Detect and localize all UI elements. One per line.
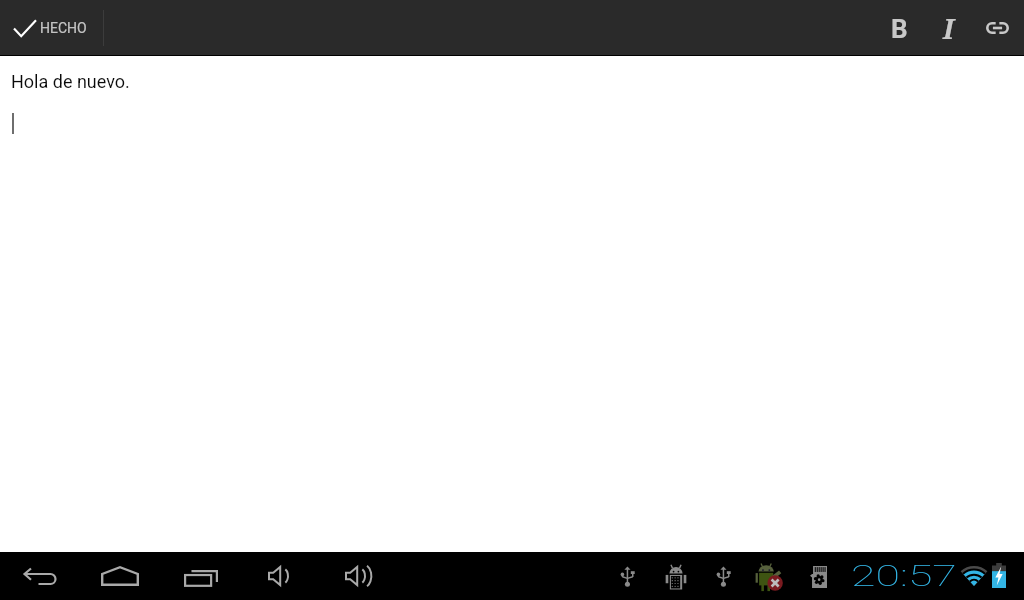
staticText: 20:57 [851, 558, 958, 593]
button[interactable]: Insert link [973, 0, 1021, 56]
staticText: B [891, 14, 908, 44]
staticText: HECHO [40, 20, 87, 36]
button[interactable]: HECHO [0, 0, 103, 56]
button[interactable]: Back [8, 552, 72, 600]
button[interactable]: Home [84, 552, 156, 600]
button[interactable]: I [924, 0, 972, 56]
button[interactable]: Note body [0, 56, 1024, 552]
staticText: I [943, 10, 954, 47]
staticText: Hola de nuevo. [11, 71, 130, 92]
button[interactable]: Recent apps [167, 552, 235, 600]
button[interactable]: Volume up [324, 552, 392, 600]
button[interactable]: B [875, 1, 923, 57]
button[interactable]: Volume down [248, 552, 308, 600]
button[interactable]: System status [600, 552, 1024, 600]
